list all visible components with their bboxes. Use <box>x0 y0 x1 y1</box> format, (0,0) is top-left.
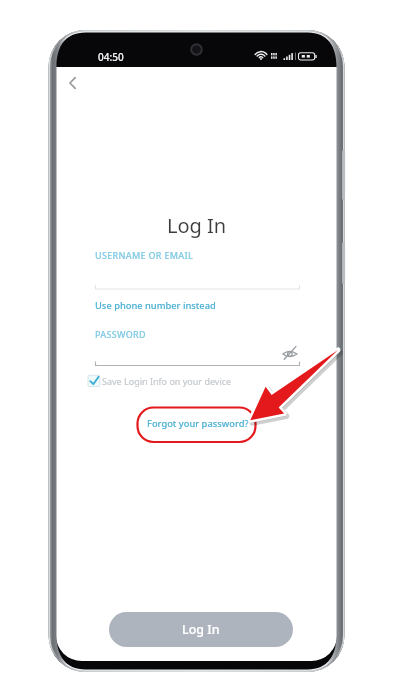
staticText: 04:50 <box>98 50 124 64</box>
button[interactable]: Use phone number instead <box>95 299 216 312</box>
button[interactable]: Forgot your password? <box>147 417 249 430</box>
staticText: Save Login Info on your device <box>102 375 232 387</box>
staticText: Log In <box>182 621 220 638</box>
button[interactable]: Log In <box>109 612 293 647</box>
staticText: Log In <box>167 212 227 239</box>
staticText: USERNAME OR EMAIL <box>95 249 194 261</box>
button[interactable]: Save Login Info on your device <box>88 372 238 390</box>
staticText: PASSWORD <box>95 328 146 340</box>
button[interactable]: Back <box>62 72 84 94</box>
button[interactable]: Show password <box>279 344 301 366</box>
